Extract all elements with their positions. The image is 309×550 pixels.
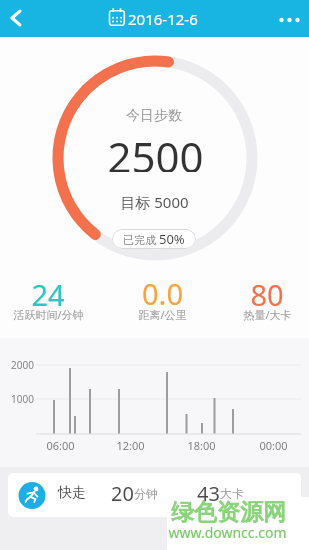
staticText: 快走 [58, 484, 86, 502]
staticText: 80 [250, 275, 284, 314]
button[interactable] [8, 473, 301, 517]
staticText: 今日步数 [126, 107, 182, 125]
staticText: 43 [197, 480, 220, 507]
staticText: 2500 [107, 128, 204, 172]
staticText: 0.0 [142, 274, 183, 313]
staticText: 12:00 [116, 438, 145, 453]
staticText: 距离/公里 [138, 307, 187, 322]
button[interactable]: 已完成 [112, 229, 196, 249]
staticText: 24 [31, 275, 65, 314]
button[interactable] [0, 0, 309, 37]
staticText: 06:00 [46, 438, 75, 453]
staticText: 热量/大卡 [243, 307, 292, 322]
staticText: 大卡 [220, 486, 244, 501]
staticText: 1000 [11, 392, 34, 406]
staticText: 已完成 [123, 232, 159, 247]
staticText: 目标 5000 [120, 192, 189, 212]
staticText: 00:00 [259, 438, 288, 453]
staticText: 活跃时间/分钟 [13, 307, 84, 322]
staticText: 18:00 [187, 438, 216, 453]
staticText: 2016-12-6 [128, 9, 198, 29]
staticText: 分钟 [134, 486, 158, 501]
staticText: 绿色资源网 [171, 498, 286, 527]
staticText: 50% [159, 230, 185, 248]
staticText: 20 [111, 480, 134, 507]
staticText: 2000 [11, 358, 34, 372]
staticText: www.downcc.com [168, 523, 287, 542]
